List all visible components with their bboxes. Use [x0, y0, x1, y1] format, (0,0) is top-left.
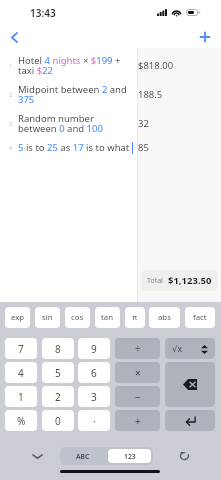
staticText: 2 [55, 390, 61, 404]
button[interactable]: Square root [165, 338, 215, 359]
staticText: 2 [9, 91, 13, 98]
button[interactable]: 5 [42, 362, 74, 383]
staticText: Random number between 0 and 100 [18, 112, 131, 135]
staticText: 1 [18, 390, 24, 404]
staticText: $1,123.50 [168, 274, 212, 287]
staticText: Hotel 4 nights × $199 + taxi $22 [18, 54, 131, 77]
button[interactable]: Back [2, 26, 26, 48]
button[interactable]: ÷ [115, 338, 160, 359]
staticText: % [17, 414, 26, 428]
staticText: abs [158, 312, 171, 323]
button[interactable]: exp [5, 307, 30, 328]
staticText: 4 [9, 144, 13, 151]
staticText: sin [42, 312, 53, 323]
button[interactable]: − [115, 386, 160, 407]
button[interactable]: tan [95, 307, 120, 328]
button[interactable]: 8 [42, 338, 74, 359]
staticText: × [135, 366, 141, 380]
button[interactable]: π [125, 307, 145, 328]
staticText: $818.00 [138, 59, 174, 72]
button[interactable]: New [193, 26, 217, 48]
staticText: 1 [9, 62, 13, 69]
button[interactable]: 1 [5, 386, 37, 407]
staticText: ÷ [135, 342, 141, 356]
button[interactable]: ABC [60, 447, 106, 465]
staticText: tan [101, 312, 114, 323]
staticText: 13:43 [30, 6, 56, 20]
button[interactable]: 3 [78, 386, 110, 407]
staticText: 4 [18, 366, 24, 380]
button[interactable]: · [78, 410, 110, 431]
button[interactable]: abs [149, 307, 180, 328]
staticText: 85 [138, 141, 149, 154]
staticText: ABC [76, 452, 90, 461]
button[interactable]: + [115, 410, 160, 431]
staticText: 188.5 [138, 88, 163, 101]
button[interactable]: × [115, 362, 160, 383]
button[interactable]: 4 [5, 362, 37, 383]
button[interactable]: Delete [165, 362, 215, 407]
staticText: 0 [55, 414, 61, 428]
button[interactable]: % [5, 410, 37, 431]
staticText: √x [172, 343, 182, 355]
staticText: cos [71, 312, 84, 323]
button[interactable]: Total [141, 270, 218, 291]
staticText: 123 [124, 452, 136, 461]
button[interactable]: 9 [78, 338, 110, 359]
button[interactable]: 2 [42, 386, 74, 407]
staticText: Midpoint between 2 and 375 [18, 83, 131, 106]
staticText: 7 [18, 342, 24, 356]
button[interactable]: cos [65, 307, 90, 328]
staticText: 5 is to 25 as 17 is to what [18, 141, 130, 154]
staticText: exp [11, 312, 25, 323]
staticText: 3 [9, 120, 13, 127]
button[interactable]: Return [165, 410, 215, 431]
staticText: 9 [91, 342, 97, 356]
button[interactable]: 7 [5, 338, 37, 359]
button[interactable]: fact [185, 307, 215, 328]
button[interactable]: 0 [42, 410, 74, 431]
button[interactable]: sin [35, 307, 60, 328]
staticText: 6 [91, 366, 97, 380]
button[interactable]: Hide keyboard [27, 447, 47, 465]
button[interactable]: Undo [174, 447, 194, 465]
staticText: 5 [55, 366, 61, 380]
staticText: 3 [91, 390, 97, 404]
staticText: fact [193, 312, 207, 323]
button[interactable]: 123 [108, 449, 151, 463]
staticText: 32 [138, 117, 149, 130]
staticText: π [132, 312, 138, 323]
staticText: + [135, 414, 141, 428]
staticText: 8 [55, 342, 61, 356]
staticText: − [135, 390, 141, 404]
button[interactable]: 6 [78, 362, 110, 383]
staticText: Total [147, 276, 163, 286]
staticText: · [93, 414, 96, 428]
